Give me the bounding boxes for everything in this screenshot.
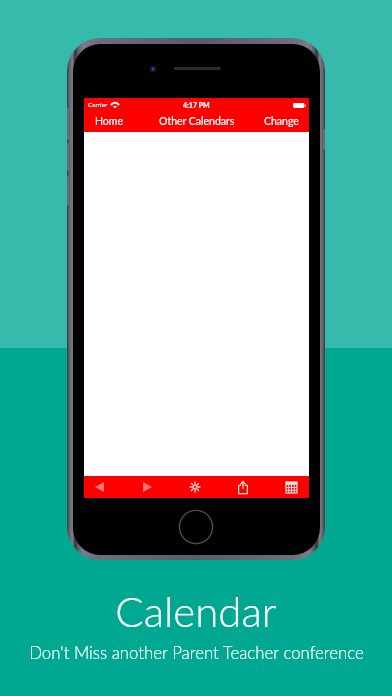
- button[interactable]: Calendar: [271, 476, 311, 498]
- staticText: Carrier: [88, 101, 108, 109]
- staticText: Calendar: [115, 586, 277, 636]
- staticText: Other Calendars: [159, 115, 235, 128]
- button[interactable]: Back: [79, 476, 119, 498]
- staticText: Don't Miss another Parent Teacher confer…: [29, 642, 364, 662]
- staticText: Home: [95, 115, 123, 128]
- button[interactable]: Change: [256, 113, 309, 130]
- button[interactable]: Home: [84, 113, 131, 130]
- button[interactable]: Share: [223, 476, 263, 498]
- button[interactable]: Forward: [127, 476, 167, 498]
- staticText: 4:17 PM: [183, 101, 210, 109]
- staticText: Change: [264, 115, 299, 128]
- button[interactable]: Refresh: [175, 476, 215, 498]
